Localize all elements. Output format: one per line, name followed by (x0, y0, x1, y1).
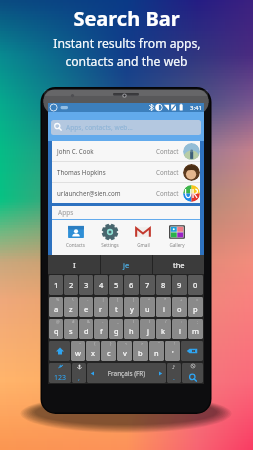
staticText: i (163, 304, 165, 314)
staticText: 7 (145, 280, 150, 290)
staticText: John C. Cook (57, 147, 156, 155)
staticText: r (99, 304, 103, 314)
staticText: 2 (69, 280, 74, 290)
staticText: Instant results from apps, (53, 35, 201, 52)
button[interactable]: ] (124, 297, 139, 317)
button[interactable]: 7 (140, 275, 155, 295)
staticText: Contact (156, 189, 179, 197)
button[interactable]: Thomas Hopkins (52, 162, 200, 182)
button[interactable]: Symbols (49, 363, 71, 383)
staticText: l (179, 326, 181, 336)
staticText: | (102, 297, 105, 302)
button[interactable]: < (117, 341, 132, 361)
button[interactable]: - (79, 297, 93, 317)
staticText: v (123, 348, 127, 358)
button[interactable]: { (86, 341, 100, 361)
button[interactable]: = (188, 297, 203, 317)
button[interactable]: John C. Cook (52, 141, 200, 161)
button[interactable]: 8 (156, 275, 171, 295)
button[interactable]: 1 (49, 275, 63, 295)
staticText: a (54, 304, 59, 314)
button[interactable]: # (64, 319, 78, 339)
button[interactable]: / (156, 319, 171, 339)
staticText: Gallery (169, 242, 185, 248)
button[interactable]: @ (49, 319, 63, 339)
button[interactable]: the (153, 255, 204, 274)
button[interactable]: Settings (100, 223, 120, 248)
button[interactable]: ; (188, 319, 203, 339)
staticText: Settings (101, 242, 119, 248)
button[interactable]: Search (182, 363, 203, 383)
button[interactable]: Contacts (65, 223, 86, 248)
staticText: 1 (54, 280, 59, 290)
button[interactable]: ( (124, 319, 139, 339)
button[interactable]: 2 (64, 275, 78, 295)
staticText: 0 (193, 280, 198, 290)
staticText: } (110, 341, 112, 346)
staticText: w (75, 348, 81, 358)
staticText: f (100, 326, 103, 336)
staticText: \ (72, 297, 74, 302)
button[interactable]: 3 (79, 275, 93, 295)
staticText: 123 (54, 373, 67, 383)
staticText: < (125, 341, 128, 346)
button[interactable]: & (79, 319, 93, 339)
button[interactable]: je (101, 255, 152, 274)
button[interactable]: 5 (109, 275, 123, 295)
staticText: ^ (148, 297, 151, 302)
staticText: @ (56, 319, 60, 324)
button[interactable]: Backspace (181, 341, 203, 361)
button[interactable]: ! (165, 341, 180, 361)
staticText: c (107, 348, 111, 358)
staticText: [ (117, 297, 119, 302)
button[interactable]: Gallery (167, 223, 187, 248)
button[interactable]: } (101, 341, 116, 361)
staticText: 8 (161, 280, 166, 290)
staticText: q (54, 326, 59, 336)
staticText: Contact (156, 168, 179, 176)
button[interactable]: 0 (188, 275, 203, 295)
button[interactable]: 6 (124, 275, 139, 295)
staticText: Gmail (137, 242, 150, 248)
button[interactable]: [ (109, 297, 123, 317)
button[interactable]: | (94, 297, 108, 317)
staticText: 6 (129, 280, 134, 290)
button[interactable]: " (149, 341, 164, 361)
staticText: u (145, 304, 150, 314)
staticText: 3:41 (190, 104, 202, 112)
staticText: e (84, 304, 89, 314)
button[interactable]: > (133, 341, 148, 361)
button[interactable]: _ (109, 319, 123, 339)
staticText: h (129, 326, 134, 336)
button[interactable]: Space, Français (FR) (87, 363, 166, 383)
button[interactable]: % (49, 297, 63, 317)
button[interactable]: \ (64, 297, 78, 317)
staticText: ; (197, 319, 199, 324)
staticText: ♪ (172, 364, 176, 370)
button[interactable]: ~ (71, 341, 85, 361)
staticText: g (114, 326, 119, 336)
button[interactable]: ) (140, 319, 155, 339)
button[interactable]: ^ (140, 297, 155, 317)
staticText: Apps (58, 208, 74, 217)
staticText: 4 (99, 280, 104, 290)
button[interactable]: Period (167, 363, 181, 383)
staticText: Search Bar (73, 5, 180, 32)
button[interactable]: Search apps, contacts and the web (51, 120, 201, 135)
staticText: = (196, 297, 199, 302)
button[interactable]: Shift (49, 341, 70, 361)
button[interactable]: Gmail (133, 223, 153, 248)
button[interactable]: 9 (172, 275, 187, 295)
staticText: : (181, 319, 183, 324)
button[interactable]: 4 (94, 275, 108, 295)
button[interactable]: * (156, 297, 171, 317)
staticText: Français (FR) (95, 369, 158, 378)
button[interactable]: urlauncher@sien.com (52, 183, 200, 203)
staticText: . (173, 373, 175, 383)
button[interactable]: + (172, 297, 187, 317)
button[interactable]: - (94, 319, 108, 339)
button[interactable]: : (172, 319, 187, 339)
button[interactable]: I (48, 255, 100, 274)
button[interactable]: Comma, voice input (72, 363, 86, 383)
staticText: , (78, 373, 80, 383)
